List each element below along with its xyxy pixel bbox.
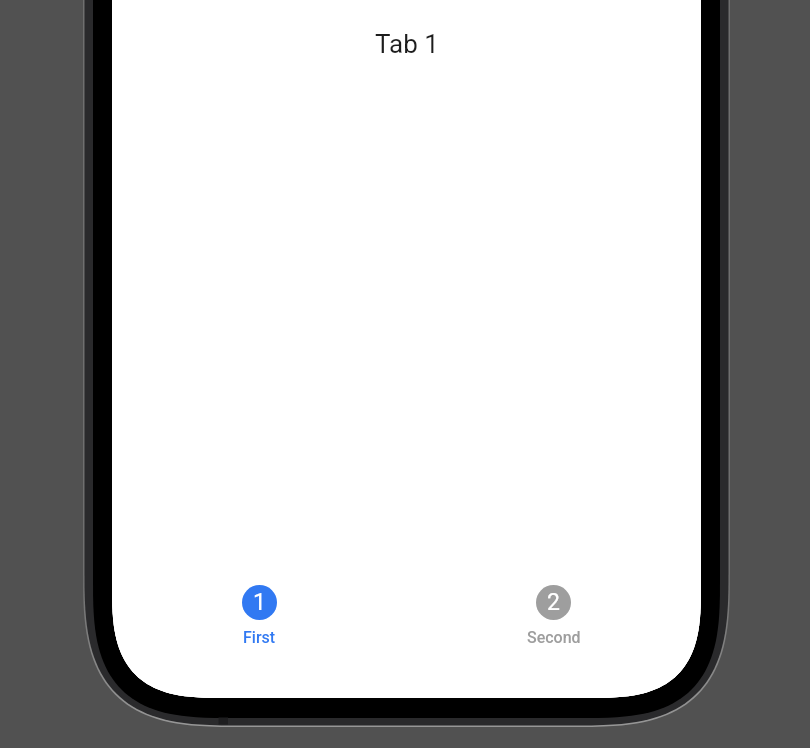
staticText: 1 bbox=[253, 589, 266, 616]
staticText: 2 bbox=[547, 589, 560, 616]
button[interactable]: Second bbox=[406, 578, 701, 676]
button[interactable]: First bbox=[112, 578, 406, 676]
staticText: Tab 1 bbox=[375, 29, 439, 59]
staticText: Second bbox=[527, 628, 581, 647]
staticText: First bbox=[243, 628, 276, 647]
